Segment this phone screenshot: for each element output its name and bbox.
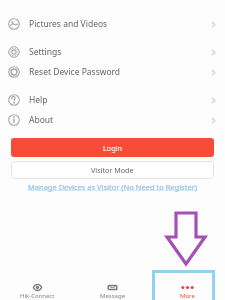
staticText: Pictures and Videos: [29, 18, 108, 30]
staticText: Message: [100, 292, 126, 300]
staticText: Hik-Connect: [20, 292, 55, 300]
button[interactable]: Hik-Connect: [0, 283, 75, 300]
other: Down arrow pointing to More tab: [166, 210, 206, 266]
staticText: More: [180, 292, 195, 300]
button[interactable]: Manage Devices as Visitor (No Need to Re…: [28, 182, 197, 192]
button[interactable]: About: [0, 110, 225, 130]
staticText: Settings: [29, 46, 62, 58]
staticText: Login: [103, 143, 123, 153]
staticText: About: [29, 114, 54, 126]
button[interactable]: Message: [75, 283, 150, 300]
button[interactable]: Visitor Mode: [11, 161, 214, 179]
button[interactable]: Login: [11, 138, 214, 157]
button[interactable]: Reset Device Password: [0, 62, 225, 82]
button[interactable]: Help: [0, 90, 225, 110]
staticText: Visitor Mode: [91, 165, 134, 175]
staticText: Reset Device Password: [29, 66, 121, 78]
button[interactable]: Pictures and Videos: [0, 14, 225, 34]
button[interactable]: Settings: [0, 42, 225, 62]
button[interactable]: More: [150, 283, 225, 300]
staticText: Help: [29, 94, 48, 106]
